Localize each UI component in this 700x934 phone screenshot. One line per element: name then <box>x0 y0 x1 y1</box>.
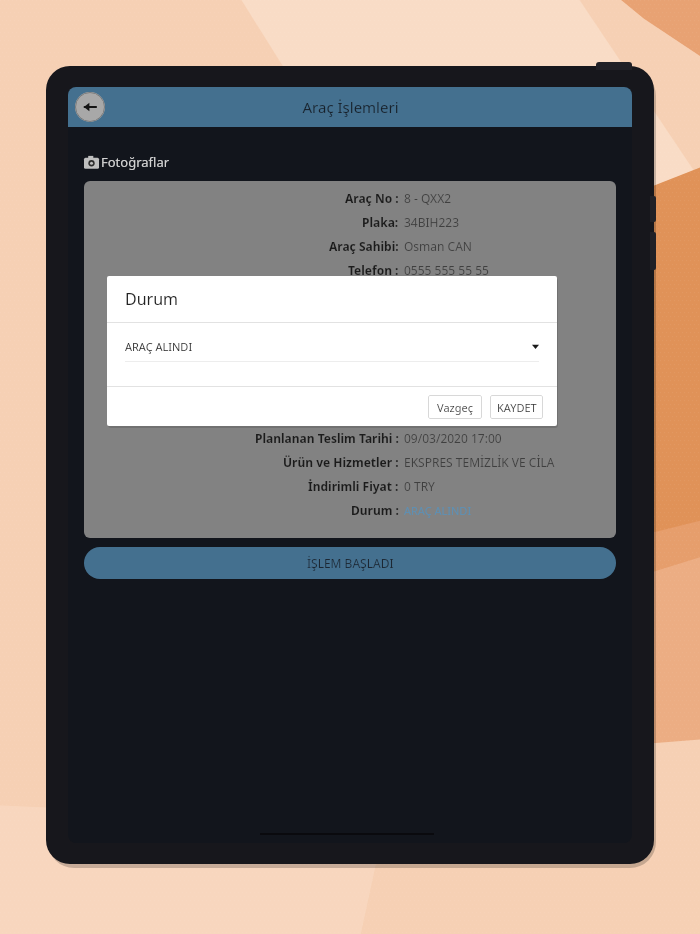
staticText: Araç İşlemleri <box>302 97 399 117</box>
staticText: ARAÇ ALINDI <box>125 339 193 354</box>
staticText: Araç No : <box>345 190 399 206</box>
staticText: VW Servis <box>404 406 459 422</box>
staticText: Teknisyen : <box>332 358 399 374</box>
staticText: ARAÇ ALINDI <box>404 503 472 518</box>
staticText: Fotoğraflar <box>101 153 170 171</box>
staticText: Durum : <box>351 502 399 518</box>
staticText: Ahmet YILMAZ <box>404 358 488 374</box>
staticText: Vazgeç <box>437 400 473 415</box>
staticText: Danışman : <box>332 382 399 398</box>
button[interactable]: İŞLEM BAŞLADI <box>84 547 616 579</box>
staticText: Plaka: <box>362 214 399 230</box>
staticText: Araç Sahibi: <box>329 238 399 254</box>
staticText: Durum <box>125 288 179 310</box>
staticText: Telefon : <box>348 262 399 278</box>
button[interactable]: Fotoğraflar <box>84 153 170 171</box>
staticText: 0 TRY <box>404 478 435 494</box>
staticText: 8 - QXX2 <box>404 190 452 206</box>
button[interactable]: KAYDET <box>490 395 543 419</box>
staticText: Geliş KM : <box>341 310 399 326</box>
staticText: Osman CAN <box>404 238 472 254</box>
staticText: İŞLEM BAŞLADI <box>307 555 394 571</box>
staticText: 34BIH223 <box>404 214 460 230</box>
button[interactable]: ARAÇ ALINDI <box>125 331 539 361</box>
staticText: EKSPRES TEMİZLİK VE CİLA <box>404 454 555 470</box>
button[interactable]: Araç No : <box>84 181 616 538</box>
staticText: Ürün ve Hizmetler : <box>283 454 399 470</box>
staticText: 45000 <box>404 310 439 326</box>
button[interactable]: Vazgeç <box>428 395 482 419</box>
staticText: 0555 555 55 55 <box>404 262 489 278</box>
staticText: KAYDET <box>497 400 537 415</box>
staticText: İndirimli Fiyat : <box>308 478 399 494</box>
staticText: 09/03/2020 17:00 <box>404 430 502 446</box>
staticText: Seray Kurumuş <box>404 382 490 398</box>
button[interactable]: Back <box>75 92 105 122</box>
staticText: Planlanan Teslim Tarihi : <box>255 430 399 446</box>
